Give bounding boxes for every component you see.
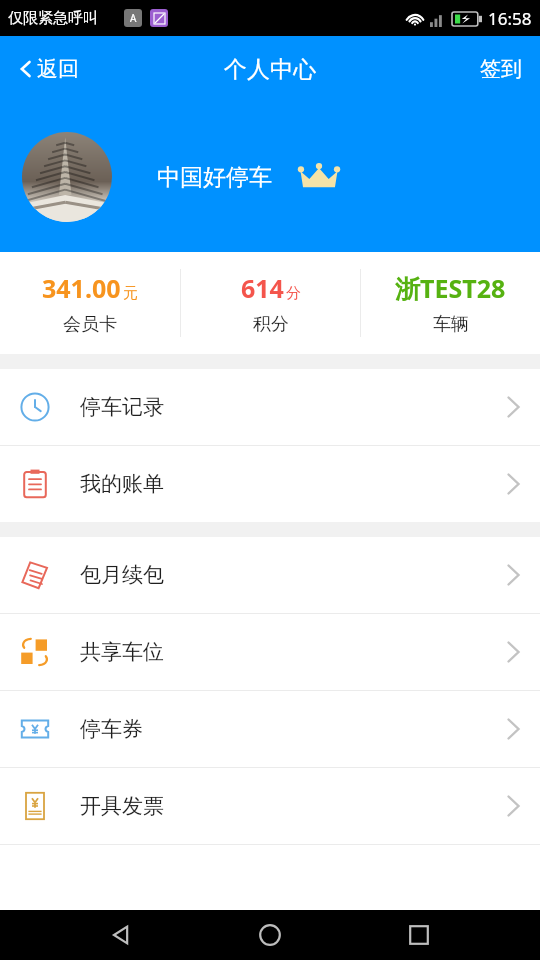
button[interactable]: 我的账单 [0, 446, 540, 522]
staticText: 共享车位 [80, 639, 164, 665]
button[interactable]: 共享车位 [0, 614, 540, 690]
other: VIP crown [298, 161, 340, 193]
staticText: 停车记录 [80, 394, 164, 420]
button[interactable]: 开具发票 [0, 768, 540, 844]
staticText: 开具发票 [80, 793, 164, 819]
staticText: 停车券 [80, 716, 143, 742]
button[interactable]: 包月续包 [0, 537, 540, 613]
button[interactable]: 停车券 [0, 691, 540, 767]
staticText: 分 [286, 284, 301, 303]
button[interactable]: 签到 [462, 48, 540, 90]
staticText: 我的账单 [80, 471, 164, 497]
staticText: 614 [241, 271, 284, 305]
button[interactable]: Back [93, 910, 149, 960]
staticText: 浙TEST28 [395, 271, 506, 305]
button[interactable]: 341.00 [0, 252, 180, 354]
staticText: 个人中心 [224, 55, 316, 84]
staticText: 仅限紧急呼叫 [8, 9, 98, 28]
button[interactable]: 浙TEST28 [361, 252, 540, 354]
button[interactable]: Recents [391, 910, 447, 960]
staticText: 返回 [37, 56, 79, 82]
button[interactable]: 614 [181, 252, 360, 354]
staticText: 元 [123, 284, 138, 303]
staticText: A [130, 11, 137, 25]
staticText: 会员卡 [63, 313, 117, 336]
staticText: 341.00 [42, 271, 121, 305]
staticText: 车辆 [433, 313, 469, 336]
staticText: 签到 [480, 56, 522, 82]
staticText: 积分 [253, 313, 289, 336]
staticText: 包月续包 [80, 562, 164, 588]
button[interactable]: Avatar [22, 132, 112, 222]
button[interactable]: Home [242, 910, 298, 960]
staticText: 16:58 [488, 7, 532, 30]
button[interactable]: 停车记录 [0, 369, 540, 445]
staticText: 中国好停车 [157, 163, 272, 192]
button[interactable]: 返回 [0, 48, 97, 90]
